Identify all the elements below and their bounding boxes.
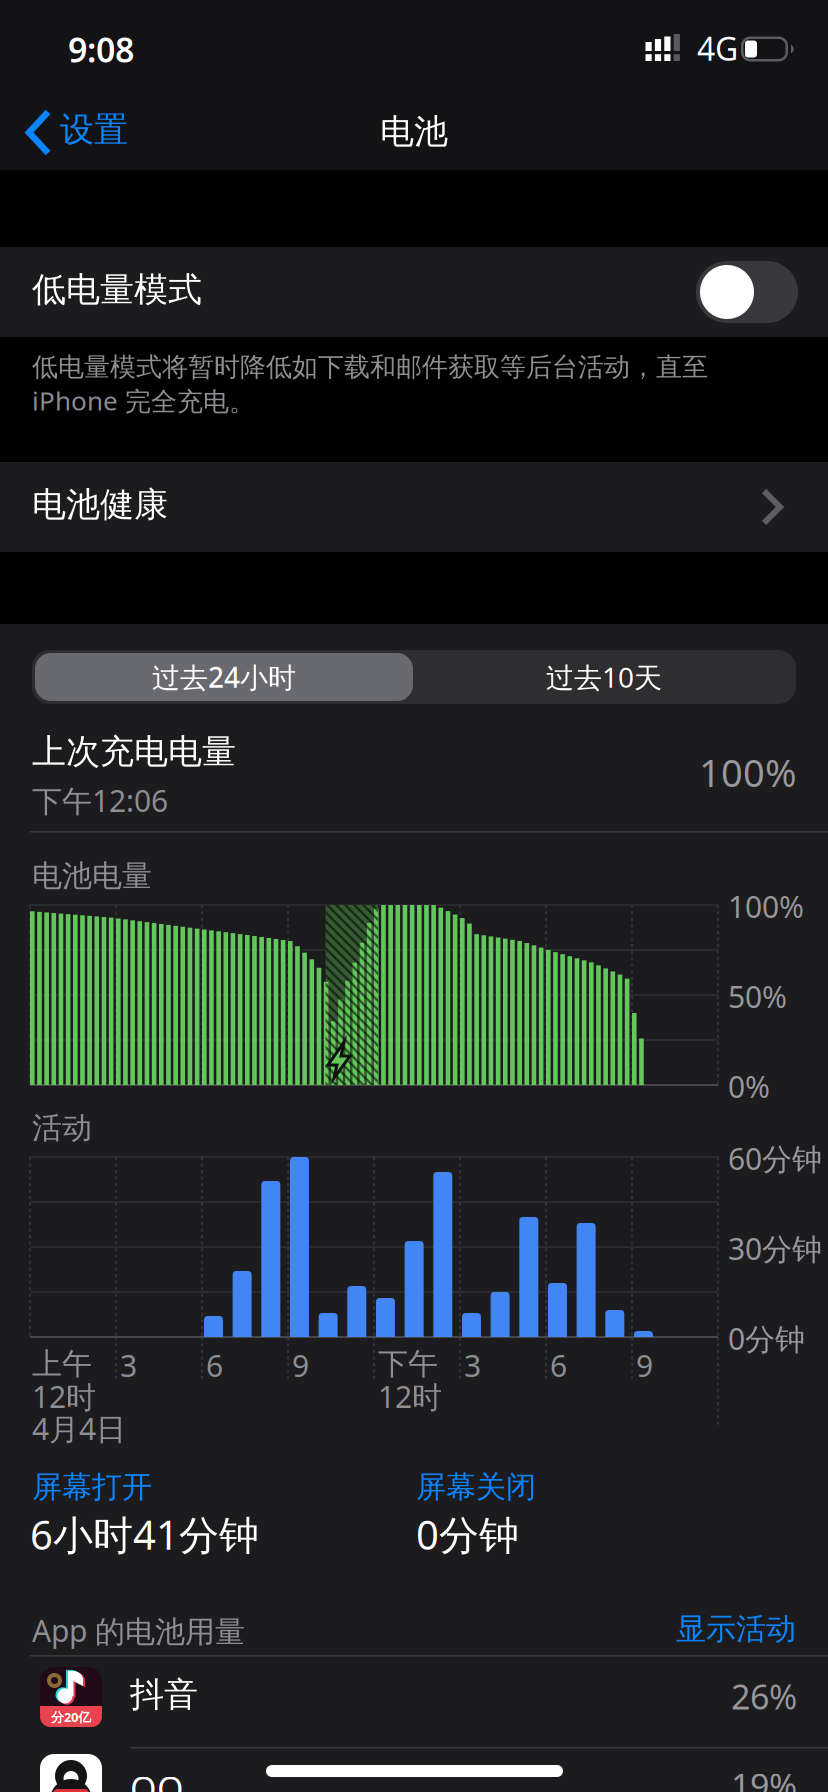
staticText: 3 xyxy=(464,1345,481,1386)
staticText: 显示活动 xyxy=(676,1610,796,1648)
staticText: 50% xyxy=(728,976,787,1017)
staticText: 分20亿 xyxy=(51,1708,91,1726)
staticText: 19% xyxy=(731,1762,797,1792)
staticText: 30分钟 xyxy=(728,1228,822,1269)
staticText: 9 xyxy=(636,1345,653,1386)
staticText: 6小时41分钟 xyxy=(30,1507,259,1561)
button[interactable]: 低电量模式 xyxy=(0,247,828,337)
staticText: 屏幕关闭 xyxy=(416,1468,536,1506)
staticText: 4G xyxy=(697,27,738,70)
staticText: 上午 xyxy=(32,1345,92,1383)
staticText: 12时 xyxy=(32,1376,96,1417)
staticText: 60分钟 xyxy=(728,1138,822,1179)
staticText: 过去24小时 xyxy=(152,658,296,696)
staticText: QQ xyxy=(130,1765,184,1792)
staticText: 9:08 xyxy=(68,26,134,72)
staticText: 上次充电电量 xyxy=(32,730,236,773)
staticText: 4月4日 xyxy=(32,1408,126,1449)
staticText: 9 xyxy=(292,1345,309,1386)
staticText: 0分钟 xyxy=(728,1318,805,1359)
staticText: 电池健康 xyxy=(32,483,168,526)
button[interactable]: 分20亿 xyxy=(0,1656,828,1747)
staticText: 低电量模式 xyxy=(32,268,202,311)
staticText: 过去10天 xyxy=(546,658,662,696)
staticText: App 的电池用量 xyxy=(32,1610,245,1651)
staticText: 下午 xyxy=(378,1345,438,1383)
staticText: 低电量模式将暂时降低如下载和邮件获取等后台活动，直至 xyxy=(32,351,708,384)
staticText: 抖音 xyxy=(130,1673,198,1716)
staticText: 6 xyxy=(550,1345,567,1386)
button[interactable]: 过去24小时 xyxy=(35,653,413,701)
staticText: 下午12:06 xyxy=(32,780,168,821)
staticText: 屏幕打开 xyxy=(32,1468,152,1506)
button[interactable]: 电池健康 xyxy=(0,462,828,552)
staticText: 26% xyxy=(731,1673,797,1719)
staticText: 3 xyxy=(120,1345,137,1386)
button[interactable]: 过去10天 xyxy=(415,653,793,701)
staticText: 0% xyxy=(728,1066,770,1107)
staticText: 12时 xyxy=(378,1376,442,1417)
staticText: 设置 xyxy=(60,108,128,151)
staticText: iPhone 完全充电。 xyxy=(32,383,255,418)
staticText: 100% xyxy=(699,746,797,798)
staticText: 0分钟 xyxy=(416,1507,519,1561)
button[interactable]: 返回设置 xyxy=(0,0,140,62)
staticText: 100% xyxy=(728,886,804,927)
staticText: 电池 xyxy=(380,110,448,153)
button[interactable]: QQ xyxy=(0,1749,828,1792)
staticText: 电池电量 xyxy=(32,857,152,895)
staticText: 6 xyxy=(206,1345,223,1386)
staticText: 活动 xyxy=(32,1109,92,1147)
